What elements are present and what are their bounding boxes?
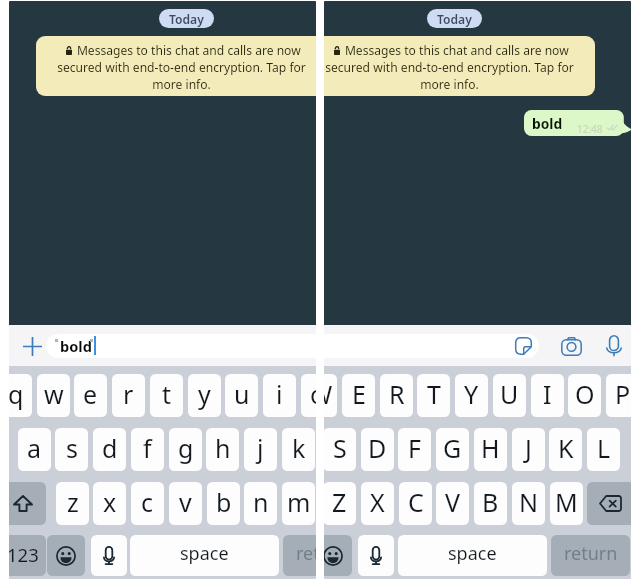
button[interactable]: C: [399, 482, 432, 525]
button[interactable]: K: [549, 428, 582, 471]
staticText: d: [102, 431, 118, 465]
button[interactable]: r: [112, 374, 145, 417]
button[interactable]: t: [150, 374, 183, 417]
staticText: S: [333, 431, 347, 465]
button[interactable]: G: [436, 428, 469, 471]
button[interactable]: space: [398, 535, 547, 576]
staticText: q: [9, 377, 24, 411]
staticText: C: [408, 485, 424, 519]
button[interactable]: j: [244, 428, 277, 471]
button[interactable]: dictate: [358, 535, 394, 576]
staticText: b: [216, 485, 232, 519]
button[interactable]: Voice message: [599, 329, 629, 363]
button[interactable]: L: [587, 428, 620, 471]
button[interactable]: h: [206, 428, 239, 471]
button[interactable]: Messages to this chat and calls are now …: [36, 36, 316, 96]
staticText: W: [324, 377, 333, 411]
staticText: e: [83, 377, 98, 411]
button[interactable]: D: [361, 428, 394, 471]
button[interactable]: N: [512, 482, 545, 525]
staticText: Today: [437, 11, 472, 27]
button[interactable]: k: [282, 428, 315, 471]
staticText: D: [368, 431, 387, 465]
button[interactable]: i: [263, 374, 296, 417]
button[interactable]: R: [380, 374, 413, 417]
staticText: j: [257, 431, 264, 465]
button[interactable]: emoji: [324, 535, 352, 576]
staticText: space: [180, 541, 229, 566]
button[interactable]: bold: [46, 334, 316, 358]
button[interactable]: 123: [9, 535, 46, 576]
staticText: x: [103, 485, 117, 519]
button[interactable]: Y: [455, 374, 488, 417]
button[interactable]: Today: [159, 9, 214, 28]
button[interactable]: n: [244, 482, 277, 525]
button[interactable]: z: [56, 482, 89, 525]
button[interactable]: o: [301, 374, 316, 417]
button[interactable]: J: [512, 428, 545, 471]
button[interactable]: w: [37, 374, 70, 417]
button[interactable]: space: [130, 535, 279, 576]
button[interactable]: emoji: [47, 535, 85, 576]
staticText: E: [352, 377, 366, 411]
staticText: Today: [169, 11, 204, 27]
button[interactable]: Stickers: [509, 332, 537, 360]
staticText: v: [179, 485, 192, 519]
button[interactable]: I: [531, 374, 564, 417]
button[interactable]: P: [606, 374, 631, 417]
staticText: Y: [464, 377, 479, 411]
staticText: m: [287, 485, 311, 519]
staticText: Messages to this chat and calls are now …: [324, 42, 582, 92]
button[interactable]: M: [550, 482, 583, 525]
button[interactable]: H: [474, 428, 507, 471]
button[interactable]: Today: [427, 9, 482, 28]
button[interactable]: dictate: [91, 535, 127, 576]
staticText: z: [67, 485, 79, 519]
button[interactable]: y: [188, 374, 221, 417]
staticText: N: [519, 485, 539, 519]
staticText: B: [482, 485, 499, 519]
button[interactable]: Messages to this chat and calls are now …: [324, 36, 595, 96]
button[interactable]: b: [207, 482, 240, 525]
button[interactable]: e: [74, 374, 107, 417]
staticText: bold: [60, 336, 92, 356]
button[interactable]: return: [283, 535, 316, 576]
button[interactable]: Z: [324, 482, 356, 525]
button[interactable]: u: [225, 374, 258, 417]
staticText: s: [66, 431, 78, 465]
button[interactable]: g: [169, 428, 202, 471]
button[interactable]: a: [18, 428, 51, 471]
button[interactable]: q: [9, 374, 32, 417]
staticText: a: [27, 431, 42, 465]
button[interactable]: return: [551, 535, 630, 576]
button[interactable]: m: [282, 482, 315, 525]
button[interactable]: W: [324, 374, 337, 417]
staticText: P: [615, 377, 631, 411]
button[interactable]: S: [324, 428, 356, 471]
button[interactable]: shift: [9, 482, 46, 525]
button[interactable]: v: [169, 482, 202, 525]
button[interactable]: V: [436, 482, 469, 525]
button[interactable]: T: [417, 374, 450, 417]
button[interactable]: X: [361, 482, 394, 525]
button[interactable]: B: [474, 482, 507, 525]
button[interactable]: s: [55, 428, 88, 471]
button[interactable]: backspace: [587, 482, 631, 525]
button[interactable]: d: [93, 428, 126, 471]
staticText: K: [558, 431, 574, 465]
button[interactable]: U: [493, 374, 526, 417]
button[interactable]: Attach: [13, 330, 51, 362]
staticText: G: [443, 431, 462, 465]
button[interactable]: f: [131, 428, 164, 471]
button[interactable]: E: [342, 374, 375, 417]
staticText: n: [253, 485, 269, 519]
staticText: r: [123, 377, 134, 411]
staticText: w: [44, 377, 64, 411]
staticText: y: [198, 377, 211, 411]
button[interactable]: O: [568, 374, 601, 417]
button[interactable]: Camera: [555, 331, 587, 361]
button[interactable]: c: [131, 482, 164, 525]
button[interactable]: x: [93, 482, 126, 525]
button[interactable]: [324, 334, 539, 358]
button[interactable]: F: [398, 428, 431, 471]
